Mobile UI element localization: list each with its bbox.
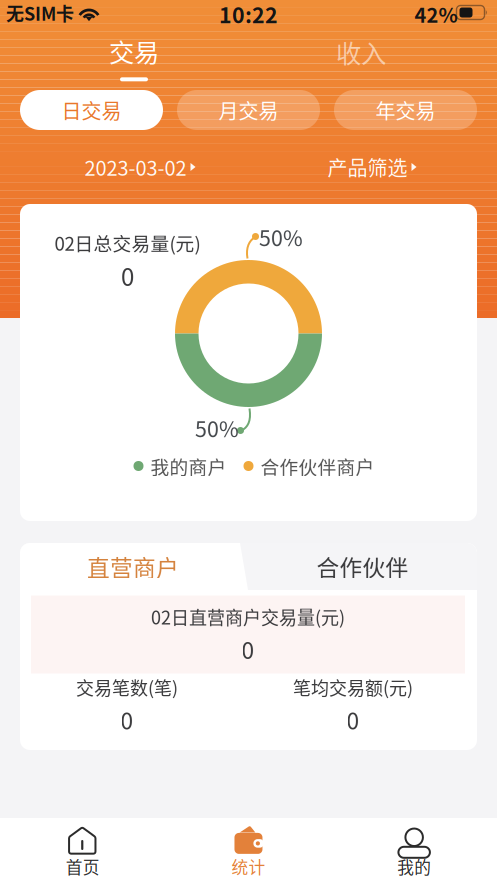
button[interactable]: 2023-03-02 [40,152,240,182]
staticText: 0 [121,258,134,293]
button[interactable]: 月交易 [177,90,320,130]
staticText: 02日总交易量(元) [54,229,200,256]
staticText: 统计 [231,854,265,878]
staticText: 02日直营商户交易量(元) [151,604,345,630]
staticText: 月交易 [218,95,278,124]
staticText: 0 [346,703,359,736]
staticText: 10:22 [219,0,278,29]
button[interactable]: 交易 [64,32,204,82]
staticText: 我的 [397,854,431,878]
button[interactable]: 收入 [291,27,431,77]
staticText: 直营商户 [87,550,179,583]
button[interactable]: 年交易 [334,90,477,130]
staticText: 合作伙伴商户 [260,452,374,479]
staticText: 0 [241,633,254,665]
staticText: 2023-03-02 [84,152,186,181]
staticText: 50% [195,413,239,443]
staticText: 收入 [336,34,386,70]
staticText: 产品筛选 [327,152,407,181]
staticText: 0 [120,703,133,736]
staticText: 无SIM卡 [6,0,74,26]
button[interactable]: 统计 [166,818,331,883]
staticText: 年交易 [375,95,435,124]
button[interactable]: 日交易 [20,90,163,130]
staticText: 交易笔数(笔) [76,674,178,700]
staticText: 交易 [109,33,159,69]
staticText: 我的商户 [150,452,226,479]
staticText: 50% [259,222,303,252]
staticText: 合作伙伴 [316,550,408,583]
staticText: 日交易 [61,95,121,124]
staticText: 笔均交易额(元) [293,674,413,700]
staticText: 首页 [66,854,100,878]
button[interactable]: 我的 [331,818,497,883]
button[interactable]: 首页 [0,818,166,883]
staticText: 42% [414,0,457,28]
button[interactable]: 产品筛选 [272,152,472,182]
button[interactable]: 合作伙伴 [248,543,477,590]
button[interactable]: 直营商户 [23,543,243,590]
